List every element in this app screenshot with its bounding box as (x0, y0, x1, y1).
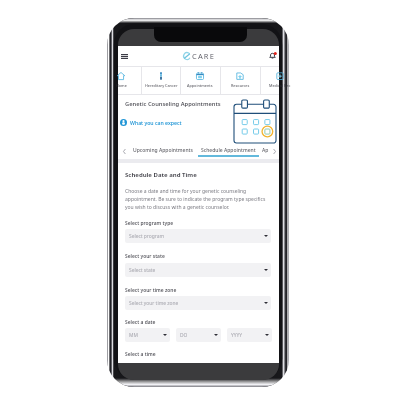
staticText: YYYY (231, 332, 243, 339)
staticText: Select state (129, 267, 156, 274)
button[interactable]: Open navigation menu (118, 50, 130, 63)
button[interactable] (180, 66, 220, 94)
button[interactable] (220, 66, 260, 94)
staticText: Select your time zone (125, 287, 177, 294)
button[interactable]: DO (176, 328, 221, 342)
staticText: Ap (262, 147, 269, 154)
button[interactable]: MM (125, 328, 170, 342)
staticText: What you can expect (130, 119, 182, 126)
staticText: Genetic Counseling Appointments (125, 100, 221, 108)
staticText: Select your time zone (129, 300, 179, 307)
staticText: Select a time (125, 351, 156, 358)
staticText: MM (129, 332, 138, 339)
button[interactable] (101, 66, 141, 94)
staticText: Select a date (125, 319, 156, 326)
staticText: Schedule Date and Time (125, 171, 197, 179)
button[interactable] (260, 66, 300, 94)
button[interactable]: Select your time zone (125, 296, 271, 310)
button[interactable] (141, 66, 181, 94)
staticText: Home (116, 83, 127, 88)
button[interactable]: YYYY (227, 328, 272, 342)
button[interactable] (118, 46, 279, 66)
staticText: DO (180, 332, 188, 339)
button[interactable] (259, 144, 269, 159)
staticText: Medical Rec (269, 83, 291, 88)
staticText: Select program type (125, 220, 174, 227)
button[interactable] (198, 144, 259, 159)
button[interactable]: Scroll tabs right (269, 144, 279, 159)
button[interactable]: Select state (125, 263, 271, 277)
button[interactable]: What you can expect (120, 118, 182, 127)
staticText: CARE (192, 51, 215, 61)
staticText: Appointments (187, 83, 213, 88)
button[interactable]: Notifications (266, 49, 278, 62)
staticText: Upcoming Appointments (133, 147, 193, 154)
staticText: Select your state (125, 253, 165, 260)
staticText: Schedule Appointment (201, 147, 256, 154)
button[interactable]: Select program (125, 229, 271, 243)
staticText: Select program (129, 233, 164, 240)
staticText: Hereditary Cancer (145, 83, 178, 88)
button[interactable]: Scroll tabs left (119, 144, 129, 159)
button[interactable] (128, 144, 198, 159)
staticText: Choose a date and time for your genetic … (125, 188, 271, 211)
staticText: Resources (231, 83, 250, 88)
button[interactable]: CARE (183, 50, 215, 61)
